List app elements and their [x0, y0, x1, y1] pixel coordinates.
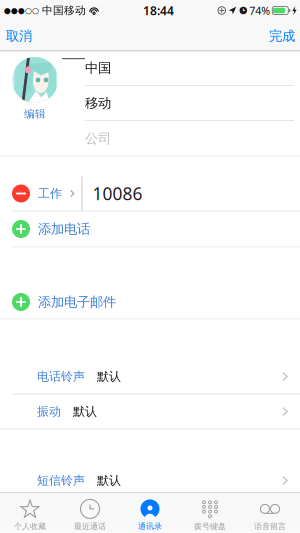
staticText: 添加电子邮件: [38, 294, 116, 310]
staticText: 工作: [38, 186, 62, 201]
button[interactable]: 通讯录: [120, 493, 180, 532]
button[interactable]: 个人收藏: [0, 493, 60, 532]
staticText: 添加电话: [38, 221, 90, 237]
staticText: 74%: [249, 3, 270, 18]
staticText: 电话铃声: [37, 369, 85, 384]
button[interactable]: 添加电话: [0, 211, 300, 246]
staticText: 默认: [73, 404, 97, 419]
staticText: 中国: [85, 60, 111, 76]
staticText: 10086: [92, 182, 142, 205]
button[interactable]: 工作: [0, 176, 300, 210]
button[interactable]: 添加电子邮件: [0, 285, 300, 318]
button[interactable]: 最近通话: [60, 493, 120, 532]
button[interactable]: 短信铃声: [0, 468, 300, 492]
staticText: 编辑: [24, 107, 46, 120]
staticText: 18:44: [143, 2, 174, 18]
staticText: 通讯录: [138, 521, 162, 531]
staticText: 完成: [269, 28, 295, 44]
staticText: ●●●○○: [4, 6, 39, 15]
button[interactable]: 拨号键盘: [180, 493, 240, 532]
staticText: 公司: [85, 130, 111, 147]
button[interactable]: 电话铃声: [0, 359, 300, 393]
button[interactable]: 完成: [261, 20, 300, 51]
staticText: 默认: [97, 369, 121, 384]
staticText: 振动: [37, 404, 61, 419]
staticText: 移动: [85, 95, 111, 111]
button[interactable]: 编辑: [24, 103, 46, 120]
button[interactable]: 取消: [0, 20, 40, 51]
staticText: 个人收藏: [14, 521, 46, 531]
button[interactable]: 振动: [0, 394, 300, 428]
staticText: 拨号键盘: [194, 521, 226, 531]
staticText: 最近通话: [74, 521, 106, 531]
staticText: 短信铃声: [37, 473, 85, 488]
staticText: 语音留言: [254, 521, 286, 531]
staticText: 取消: [6, 28, 32, 44]
staticText: 中国移动: [39, 4, 89, 17]
staticText: 默认: [97, 473, 121, 488]
button[interactable]: 语音留言: [240, 493, 300, 532]
